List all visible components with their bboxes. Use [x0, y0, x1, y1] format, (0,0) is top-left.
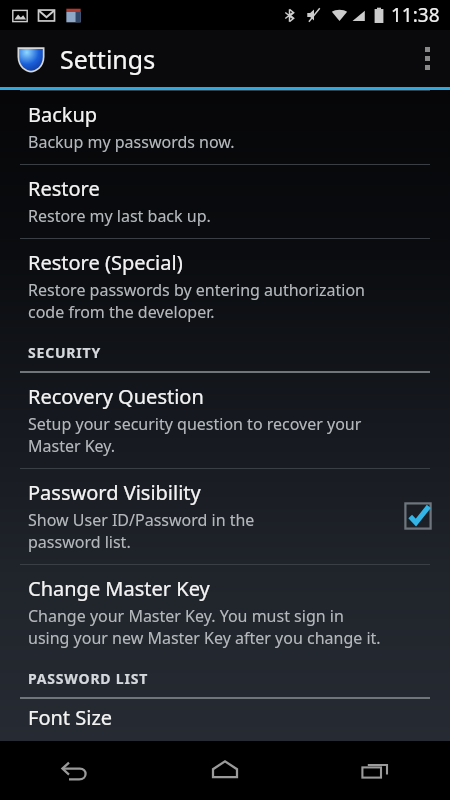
staticText: Change your Master Key. You must sign in [28, 605, 344, 627]
staticText: Master Key. [28, 435, 116, 457]
button[interactable]: Home [150, 741, 300, 800]
button[interactable]: Recent apps [300, 741, 450, 800]
staticText: Restore passwords by entering authorizat… [28, 279, 366, 301]
button[interactable]: Settings [16, 42, 156, 76]
staticText: Restore [28, 175, 100, 202]
button[interactable]: Restore [0, 165, 450, 238]
button[interactable]: Back [0, 741, 150, 800]
staticText: 11:38 [391, 2, 440, 28]
staticText: Recovery Question [28, 383, 204, 410]
button[interactable]: Change Master Key [0, 565, 450, 660]
staticText: Font Size [28, 704, 113, 729]
staticText: using your new Master Key after you chan… [28, 627, 381, 649]
staticText: Restore (Special) [28, 249, 183, 276]
button[interactable]: Restore (Special) [0, 239, 450, 334]
staticText: Backup my passwords now. [28, 131, 235, 153]
staticText: Settings [60, 42, 156, 76]
staticText: password list. [28, 531, 131, 553]
staticText: Restore my last back up. [28, 205, 211, 227]
button[interactable]: Password visibility toggle [402, 500, 434, 532]
staticText: Setup your security question to recover … [28, 413, 362, 435]
button[interactable]: Font Size [0, 699, 450, 729]
staticText: SECURITY [28, 343, 101, 362]
button[interactable]: Backup [0, 91, 450, 164]
staticText: Password Visibility [28, 479, 201, 506]
button[interactable]: Recovery Question [0, 373, 450, 468]
staticText: code from the developer. [28, 301, 215, 323]
button[interactable]: Password Visibility [0, 469, 450, 564]
staticText: Change Master Key [28, 575, 210, 602]
staticText: Backup [28, 101, 98, 128]
staticText: Show User ID/Password in the [28, 509, 255, 531]
button[interactable]: More options [404, 30, 450, 87]
staticText: PASSWORD LIST [28, 669, 149, 688]
